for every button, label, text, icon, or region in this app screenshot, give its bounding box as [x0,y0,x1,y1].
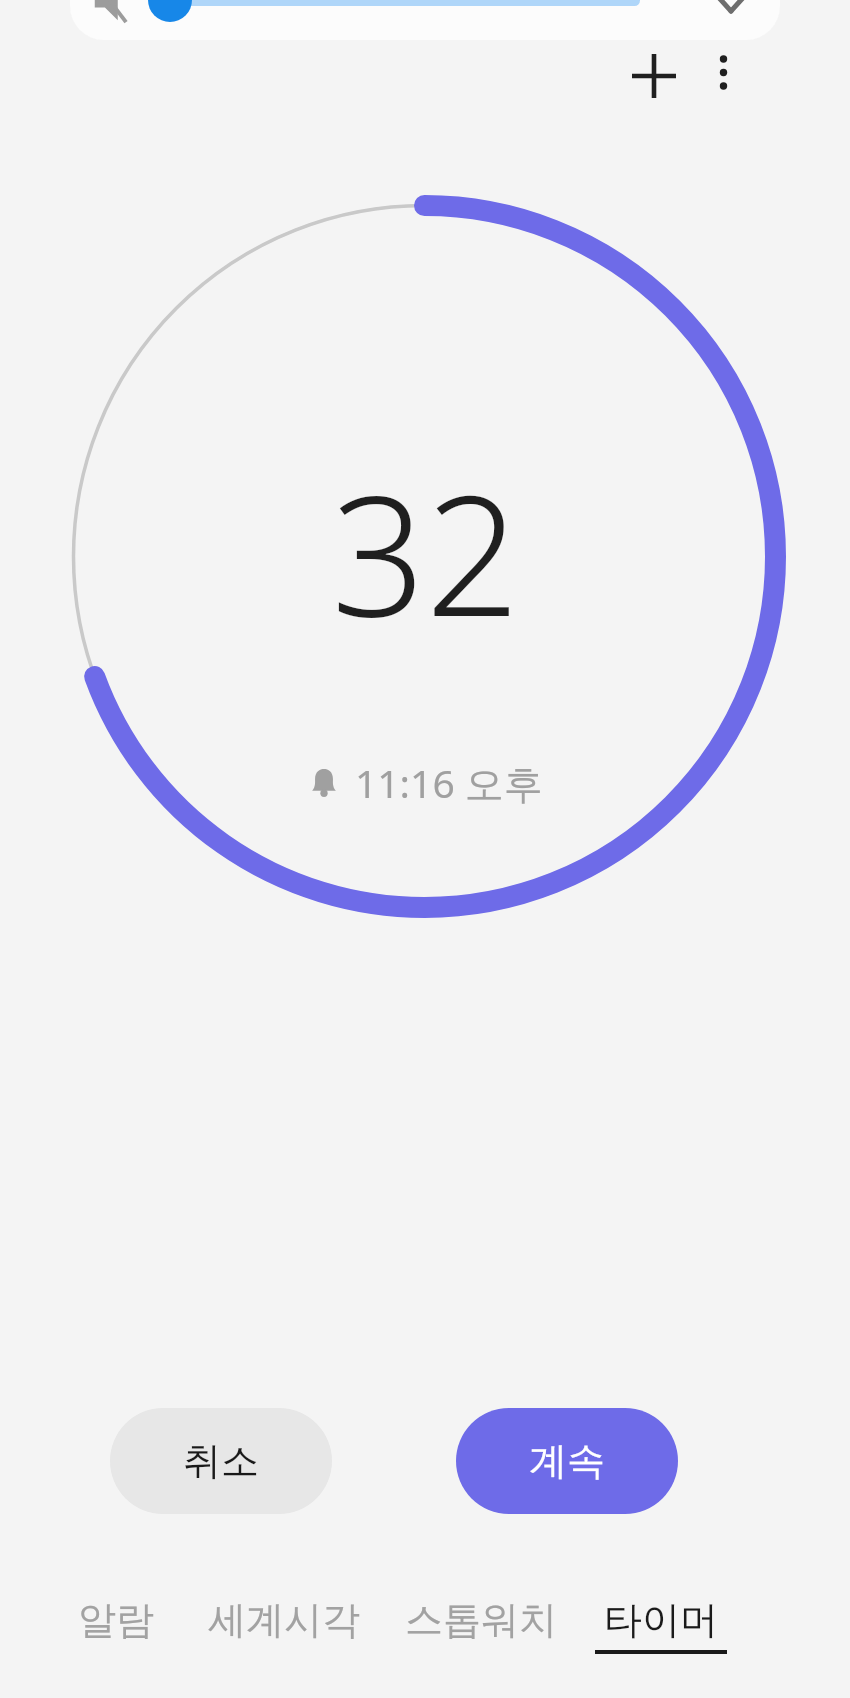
button[interactable]: 계속 [456,1408,678,1514]
staticText: 세계시각 [208,1596,360,1644]
staticText: 32 [331,440,520,640]
staticText: 스톱워치 [405,1596,557,1644]
button[interactable]: 타이머 추가 [611,33,697,119]
staticText: 알람 [78,1596,154,1644]
button[interactable]: 더보기 [684,33,762,111]
button[interactable]: 스톱워치 [385,1596,577,1688]
button[interactable]: 타이머 [565,1596,757,1688]
button[interactable]: 취소 [110,1408,332,1514]
staticText: 11:16 오후 [355,756,543,809]
staticText: 계속 [529,1437,605,1485]
button[interactable]: 알람 [20,1596,212,1688]
button[interactable]: 세계시각 [188,1596,380,1688]
staticText: 취소 [183,1437,259,1485]
staticText: 타이머 [604,1596,718,1644]
